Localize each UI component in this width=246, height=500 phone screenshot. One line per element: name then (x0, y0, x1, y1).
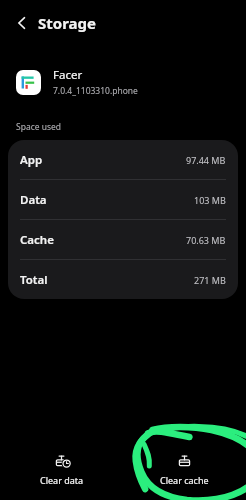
button[interactable]: Cache (8, 220, 238, 259)
staticText: Cache (20, 232, 54, 248)
button[interactable]: Total (8, 260, 238, 299)
staticText: 271 MB (194, 274, 226, 286)
staticText: Data (20, 192, 47, 208)
staticText: App (20, 152, 43, 168)
staticText: Clear data (40, 474, 84, 486)
staticText: Clear cache (160, 474, 209, 486)
staticText: 7.0.4_1103310.phone (53, 85, 138, 97)
staticText: Total (20, 272, 48, 288)
button[interactable]: Facer (0, 65, 246, 99)
button[interactable]: App (8, 140, 238, 179)
button[interactable]: Clear data (0, 445, 123, 492)
staticText: 103 MB (194, 194, 226, 206)
button[interactable]: Data (8, 180, 238, 219)
staticText: Space used (16, 121, 62, 133)
staticText: Storage (38, 13, 96, 33)
staticText: Facer (53, 67, 83, 83)
button[interactable]: Clear cache (123, 445, 246, 492)
staticText: 70.63 MB (186, 234, 226, 246)
staticText: 97.44 MB (186, 154, 226, 166)
button[interactable]: Back (10, 11, 34, 35)
